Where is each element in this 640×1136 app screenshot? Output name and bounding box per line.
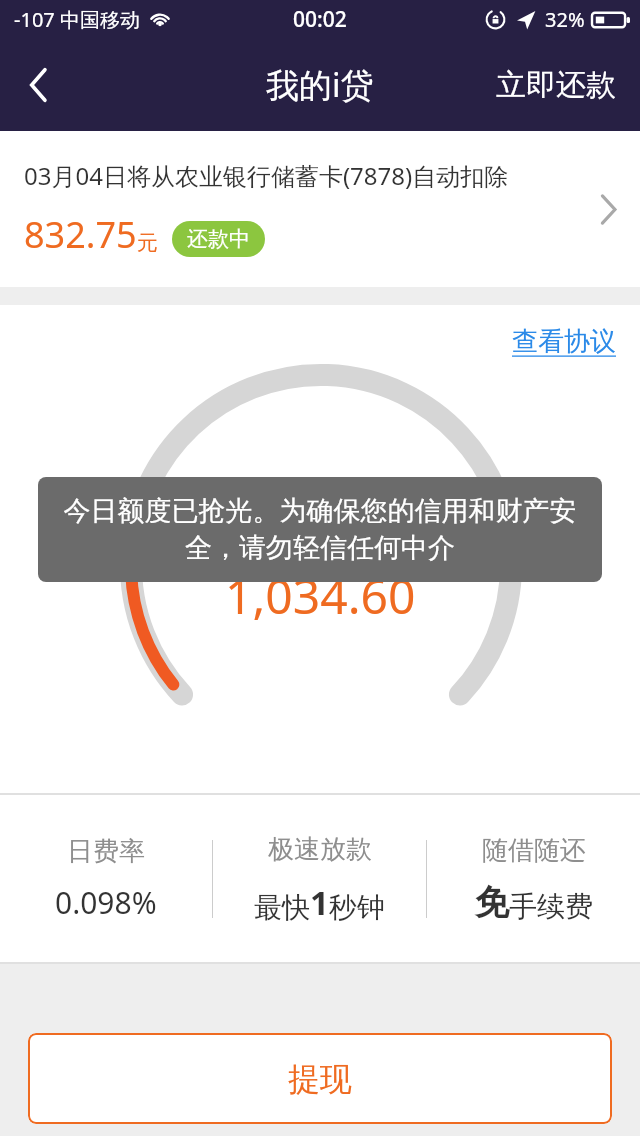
button[interactable]: 提现 (28, 1033, 612, 1124)
button[interactable]: 立即还款 (472, 38, 640, 131)
staticText: 秒钟 (329, 890, 385, 925)
staticText: 提现 (288, 1059, 352, 1099)
staticText: 832.75 (24, 210, 137, 259)
staticText: 03月04日将从农业银行储蓄卡(7878)自动扣除 (24, 159, 509, 192)
button[interactable]: 随借随还 (427, 795, 640, 962)
staticText: 手续费 (509, 889, 593, 924)
staticText: 随借随还 (482, 834, 586, 867)
button[interactable]: 极速放款 (213, 795, 426, 962)
staticText: 32% (545, 6, 585, 33)
staticText: 今日额度已抢光。为确保您的信用和财产安全，请勿轻信任何中介 (58, 494, 582, 565)
staticText: 00:02 (293, 5, 347, 34)
button[interactable]: 03月04日将从农业银行储蓄卡(7878)自动扣除 (0, 131, 640, 287)
staticText: -107 中国移动 (14, 6, 140, 33)
staticText: 最快 (254, 890, 310, 925)
staticText: 还款中 (187, 226, 250, 252)
staticText: 可用额度(元) (250, 517, 391, 551)
button[interactable]: 日费率 (0, 795, 212, 962)
staticText: 1,034.60 (225, 563, 416, 628)
staticText: 元 (137, 230, 158, 256)
staticText: 免 (475, 881, 509, 924)
staticText: 我的i贷 (266, 62, 374, 107)
button[interactable]: Back (0, 38, 76, 131)
button[interactable]: 查看协议 (508, 321, 620, 362)
staticText: 1 (310, 880, 329, 925)
button[interactable]: 还款中 (172, 221, 265, 257)
staticText: 日费率 (67, 835, 145, 868)
staticText: 立即还款 (496, 66, 616, 104)
staticText: 0.098% (55, 882, 157, 923)
staticText: 极速放款 (268, 833, 372, 866)
staticText: 查看协议 (512, 325, 616, 358)
